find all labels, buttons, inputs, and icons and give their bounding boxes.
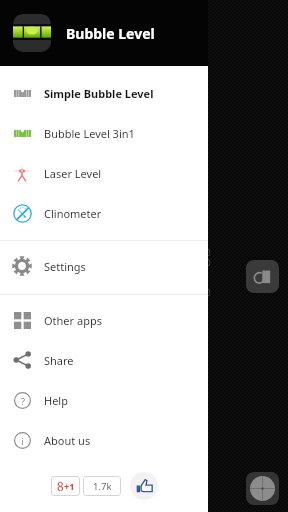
staticText: 0.0 [198,246,211,256]
staticText: Settings [44,259,86,274]
button[interactable]: Calibrate [246,472,279,505]
button[interactable]: Other apps [0,300,208,340]
button[interactable]: Laser Level [0,153,208,193]
staticText: +1 [64,480,75,492]
button[interactable]: 1.7k [83,476,121,496]
staticText: Share [44,353,74,368]
staticText: Clinometer [44,206,102,221]
staticText: 0.0 [198,256,211,266]
staticText: Other apps [44,313,102,328]
staticText: Simple Bubble Level [44,86,154,101]
button[interactable]: Simple Bubble Level [0,73,208,113]
button[interactable]: Lock screen [246,260,279,293]
staticText: Bubble Level 3in1 [44,126,135,141]
staticText: Bubble Level [66,24,155,43]
staticText: 8 [57,478,64,494]
staticText: 1.7k [93,480,112,493]
button[interactable]: Bubble Level [0,0,208,66]
staticText: Help [44,393,68,408]
staticText: Laser Level [44,166,102,181]
button[interactable]: Bubble Level 3in1 [0,113,208,153]
button[interactable]: Like on Facebook [130,472,158,500]
button[interactable]: Google plus one [51,476,80,496]
button[interactable]: Share [0,340,208,380]
button[interactable]: Clinometer [0,193,208,233]
staticText: About us [44,433,91,448]
staticText: ? [21,395,25,407]
staticText: i [21,435,24,447]
staticText: 0.0 [198,286,211,296]
button[interactable]: ? [0,380,208,420]
button[interactable]: i [0,420,208,460]
button[interactable]: Settings [0,246,208,286]
